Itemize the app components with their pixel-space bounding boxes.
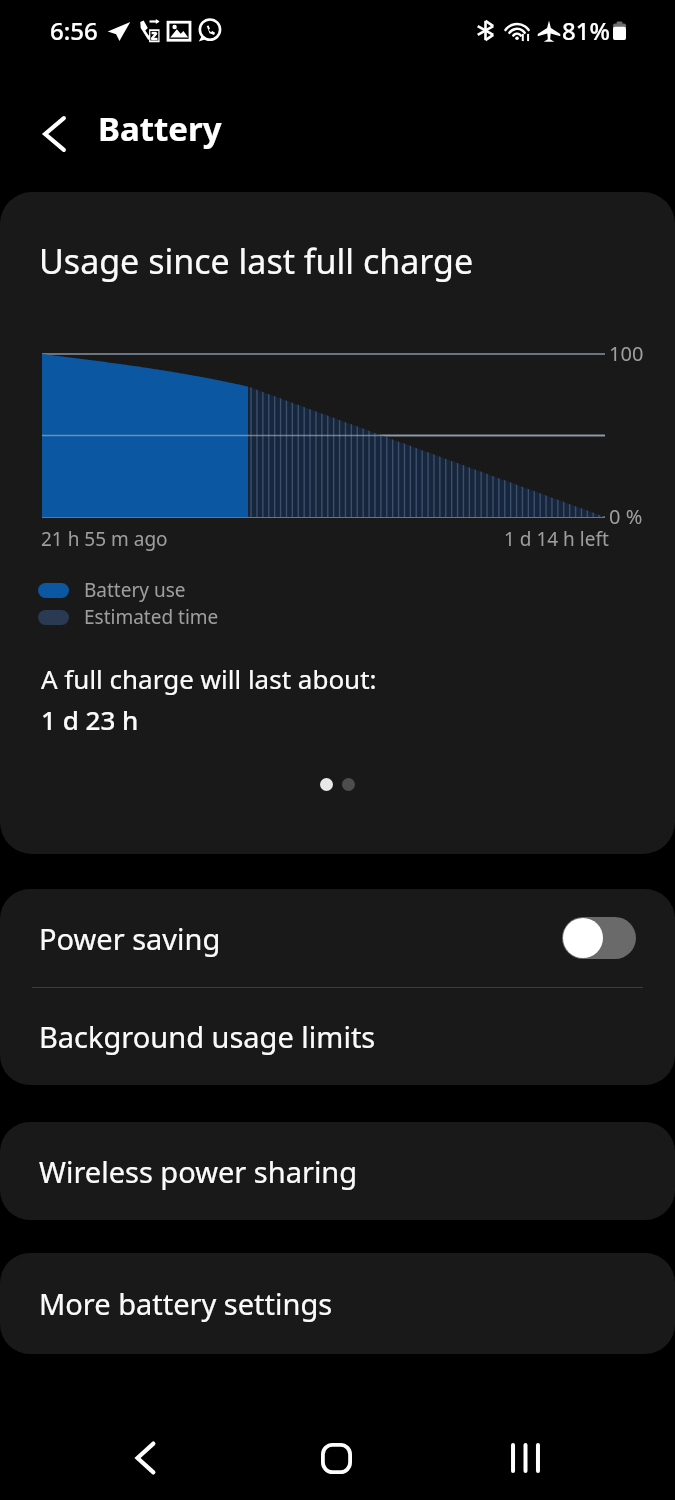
button[interactable]: Page 1 [320, 778, 333, 791]
staticText: Power saving [39, 919, 221, 958]
staticText: Estimated time [84, 604, 219, 630]
button[interactable]: Power saving toggle [562, 917, 636, 959]
staticText: 81% [562, 14, 610, 47]
staticText: Usage since last full charge [39, 238, 474, 284]
button[interactable]: Back [23, 103, 85, 165]
button[interactable]: Recent apps [470, 1425, 580, 1491]
staticText: 100 [609, 340, 644, 367]
staticText: Battery [98, 106, 222, 151]
staticText: Battery use [84, 577, 186, 603]
staticText: 0 % [609, 503, 643, 530]
button[interactable]: Page 2 [342, 778, 355, 791]
staticText: 1 d 14 h left [504, 526, 609, 552]
button[interactable]: Wireless power sharing [0, 1122, 675, 1220]
staticText: 6:56 [50, 14, 98, 47]
button[interactable]: Back [90, 1425, 200, 1491]
staticText: A full charge will last about: [41, 661, 377, 696]
staticText: 1 d 23 h [41, 702, 139, 737]
staticText: Background usage limits [39, 1017, 376, 1056]
staticText: More battery settings [39, 1284, 333, 1323]
button[interactable]: Power saving [0, 889, 675, 987]
button[interactable]: Home [281, 1425, 391, 1491]
staticText: Wireless power sharing [39, 1152, 358, 1191]
button[interactable]: Usage since last full charge [0, 192, 675, 854]
staticText: 21 h 55 m ago [41, 526, 168, 552]
button[interactable]: More battery settings [0, 1253, 675, 1354]
button[interactable]: Background usage limits [0, 988, 675, 1085]
